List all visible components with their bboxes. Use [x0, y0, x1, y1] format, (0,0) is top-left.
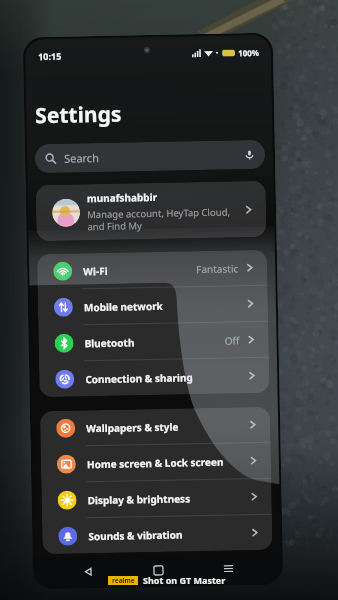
staticText: Fantastic — [196, 261, 238, 276]
button[interactable]: Display & brightness — [41, 479, 272, 518]
staticText: 10:15 — [38, 50, 62, 62]
staticText: Sounds & vibration — [88, 527, 183, 543]
button[interactable]: Mobile network — [38, 286, 268, 325]
staticText: Bluetooth — [84, 335, 135, 350]
staticText: Shot on GT Master — [143, 574, 226, 586]
staticText: realme — [112, 576, 135, 585]
button[interactable]: Home screen & Lock screen — [41, 443, 271, 482]
staticText: Wallpapers & style — [86, 419, 179, 435]
staticText: Display & brightness — [87, 491, 191, 507]
staticText: Mobile network — [84, 299, 163, 314]
staticText: Settings — [35, 100, 122, 130]
button[interactable]: Home — [141, 555, 175, 585]
button[interactable]: Connection & sharing — [39, 358, 270, 397]
button[interactable]: Recents — [211, 553, 245, 584]
button[interactable]: Wi-Fi — [37, 250, 267, 289]
staticText: 100% — [238, 47, 259, 58]
staticText: Search — [64, 150, 99, 166]
button[interactable]: munafshabbir — [36, 181, 267, 241]
staticText: Connection & sharing — [85, 370, 193, 386]
staticText: Off — [224, 333, 240, 348]
button[interactable]: Back — [71, 556, 105, 587]
button[interactable]: Bluetooth — [38, 322, 269, 361]
button[interactable]: Wallpapers & style — [40, 407, 270, 446]
button[interactable]: Sounds & vibration — [42, 515, 273, 554]
staticText: Home screen & Lock screen — [87, 455, 224, 471]
button[interactable]: Search — [35, 140, 265, 173]
staticText: Wi-Fi — [83, 264, 108, 278]
staticText: Manage account, HeyTap Cloud, and Find M… — [87, 205, 230, 233]
staticText: munafshabbir — [87, 190, 158, 205]
